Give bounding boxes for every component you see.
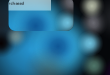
- button[interactable]: Purchased: [0, 0, 51, 11]
- staticText: Purchased: [3, 1, 24, 6]
